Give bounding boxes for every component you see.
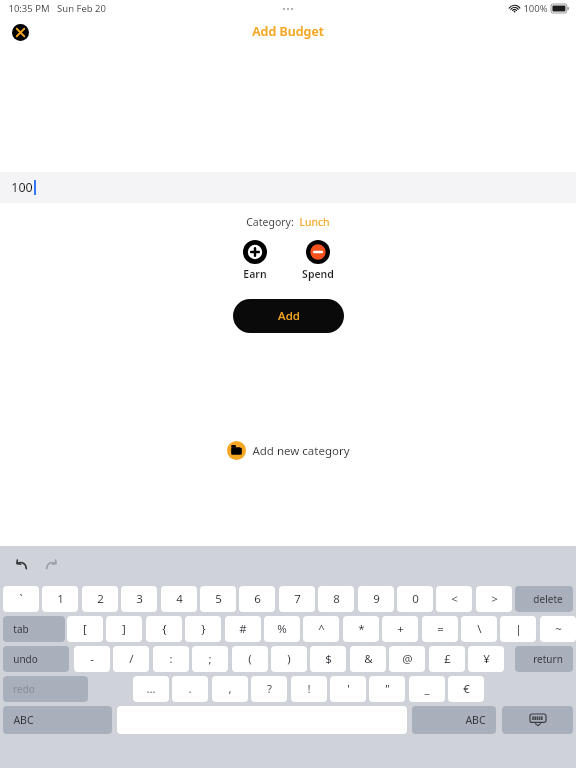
staticText: / xyxy=(129,651,134,667)
button[interactable]: Add xyxy=(233,299,344,333)
button[interactable]: Close xyxy=(8,20,32,44)
staticText: @ xyxy=(402,651,413,667)
button[interactable]: \ xyxy=(461,616,497,642)
button[interactable]: Earn xyxy=(237,240,273,281)
button[interactable]: return xyxy=(515,646,573,672)
button[interactable]: ' xyxy=(330,676,366,702)
button[interactable]: 8 xyxy=(318,586,354,612)
staticText: 10:35 PM xyxy=(8,2,50,15)
staticText: ? xyxy=(267,681,272,697)
button[interactable]: / xyxy=(113,646,149,672)
button[interactable]: 100 xyxy=(0,172,576,203)
button[interactable]: delete xyxy=(515,586,573,612)
staticText: 2 xyxy=(97,591,104,607)
staticText: < xyxy=(451,591,458,607)
button[interactable]: Redo xyxy=(40,554,62,576)
button[interactable]: 6 xyxy=(239,586,275,612)
staticText: Category: xyxy=(246,215,294,229)
staticText: ` xyxy=(19,591,23,607)
button[interactable]: 7 xyxy=(279,586,315,612)
button[interactable]: { xyxy=(146,616,182,642)
staticText: 3 xyxy=(136,591,143,607)
button[interactable]: 1 xyxy=(42,586,78,612)
button[interactable]: redo xyxy=(3,676,88,702)
staticText: ABC xyxy=(465,713,486,727)
button[interactable]: 0 xyxy=(397,586,433,612)
staticText: = xyxy=(437,621,444,637)
staticText: ; xyxy=(208,651,212,667)
button[interactable]: 5 xyxy=(200,586,236,612)
button[interactable]: . xyxy=(172,676,208,702)
button[interactable]: , xyxy=(212,676,248,702)
button[interactable]: " xyxy=(369,676,405,702)
staticText: % xyxy=(277,621,287,637)
button[interactable]: ... xyxy=(133,676,169,702)
button[interactable]: $ xyxy=(310,646,346,672)
button[interactable]: _ xyxy=(409,676,445,702)
button[interactable]: Undo xyxy=(10,554,32,576)
button[interactable]: | xyxy=(500,616,536,642)
button[interactable]: : xyxy=(153,646,189,672)
button[interactable]: - xyxy=(74,646,110,672)
button[interactable]: 4 xyxy=(161,586,197,612)
button[interactable]: * xyxy=(343,616,379,642)
staticText: € xyxy=(463,681,470,697)
button[interactable]: tab xyxy=(3,616,65,642)
staticText: - xyxy=(90,651,94,667)
staticText: [ xyxy=(83,621,87,637)
staticText: 8 xyxy=(333,591,340,607)
button[interactable]: Lunch xyxy=(299,215,330,229)
button[interactable]: ABC xyxy=(412,706,496,734)
button[interactable]: = xyxy=(422,616,458,642)
button[interactable]: ¥ xyxy=(468,646,504,672)
staticText: tab xyxy=(13,622,29,636)
button[interactable]: ; xyxy=(192,646,228,672)
button[interactable] xyxy=(502,706,573,734)
staticText: + xyxy=(397,621,404,637)
button[interactable]: > xyxy=(476,586,512,612)
button[interactable]: 3 xyxy=(121,586,157,612)
staticText: 4 xyxy=(176,591,183,607)
button[interactable]: undo xyxy=(3,646,69,672)
staticText: ... xyxy=(146,681,156,697)
button[interactable]: ] xyxy=(106,616,142,642)
staticText: } xyxy=(201,621,206,637)
button[interactable]: ^ xyxy=(303,616,339,642)
button[interactable]: [ xyxy=(67,616,103,642)
button[interactable]: ! xyxy=(291,676,327,702)
staticText: delete xyxy=(533,592,563,606)
button[interactable]: ABC xyxy=(3,706,112,734)
button[interactable]: & xyxy=(350,646,386,672)
button[interactable]: ` xyxy=(3,586,39,612)
staticText: 1 xyxy=(57,591,64,607)
button[interactable]: £ xyxy=(429,646,465,672)
button[interactable]: Add new category xyxy=(227,441,350,460)
button[interactable]: ( xyxy=(232,646,268,672)
staticText: * xyxy=(358,621,365,637)
button[interactable]: } xyxy=(185,616,221,642)
button[interactable]: ? xyxy=(251,676,287,702)
button[interactable]: ~ xyxy=(540,616,576,642)
button[interactable]: ) xyxy=(271,646,307,672)
staticText: redo xyxy=(13,682,35,696)
button[interactable]: % xyxy=(264,616,300,642)
staticText: $ xyxy=(325,651,332,667)
staticText: Lunch xyxy=(299,215,330,229)
staticText: ABC xyxy=(13,713,34,727)
button[interactable]: Spend xyxy=(296,240,340,281)
button[interactable]: @ xyxy=(389,646,425,672)
button[interactable]: 9 xyxy=(358,586,394,612)
button[interactable]: < xyxy=(436,586,472,612)
button[interactable]: 2 xyxy=(82,586,118,612)
button[interactable]: + xyxy=(382,616,418,642)
staticText: . xyxy=(188,681,192,697)
staticText: return xyxy=(533,652,563,666)
button[interactable]: € xyxy=(448,676,484,702)
staticText: ~ xyxy=(555,621,562,637)
staticText: Sun Feb 20 xyxy=(57,2,106,15)
staticText: ' xyxy=(347,681,350,697)
staticText: Add xyxy=(278,308,300,324)
staticText: ( xyxy=(248,651,252,667)
button[interactable]: # xyxy=(225,616,261,642)
